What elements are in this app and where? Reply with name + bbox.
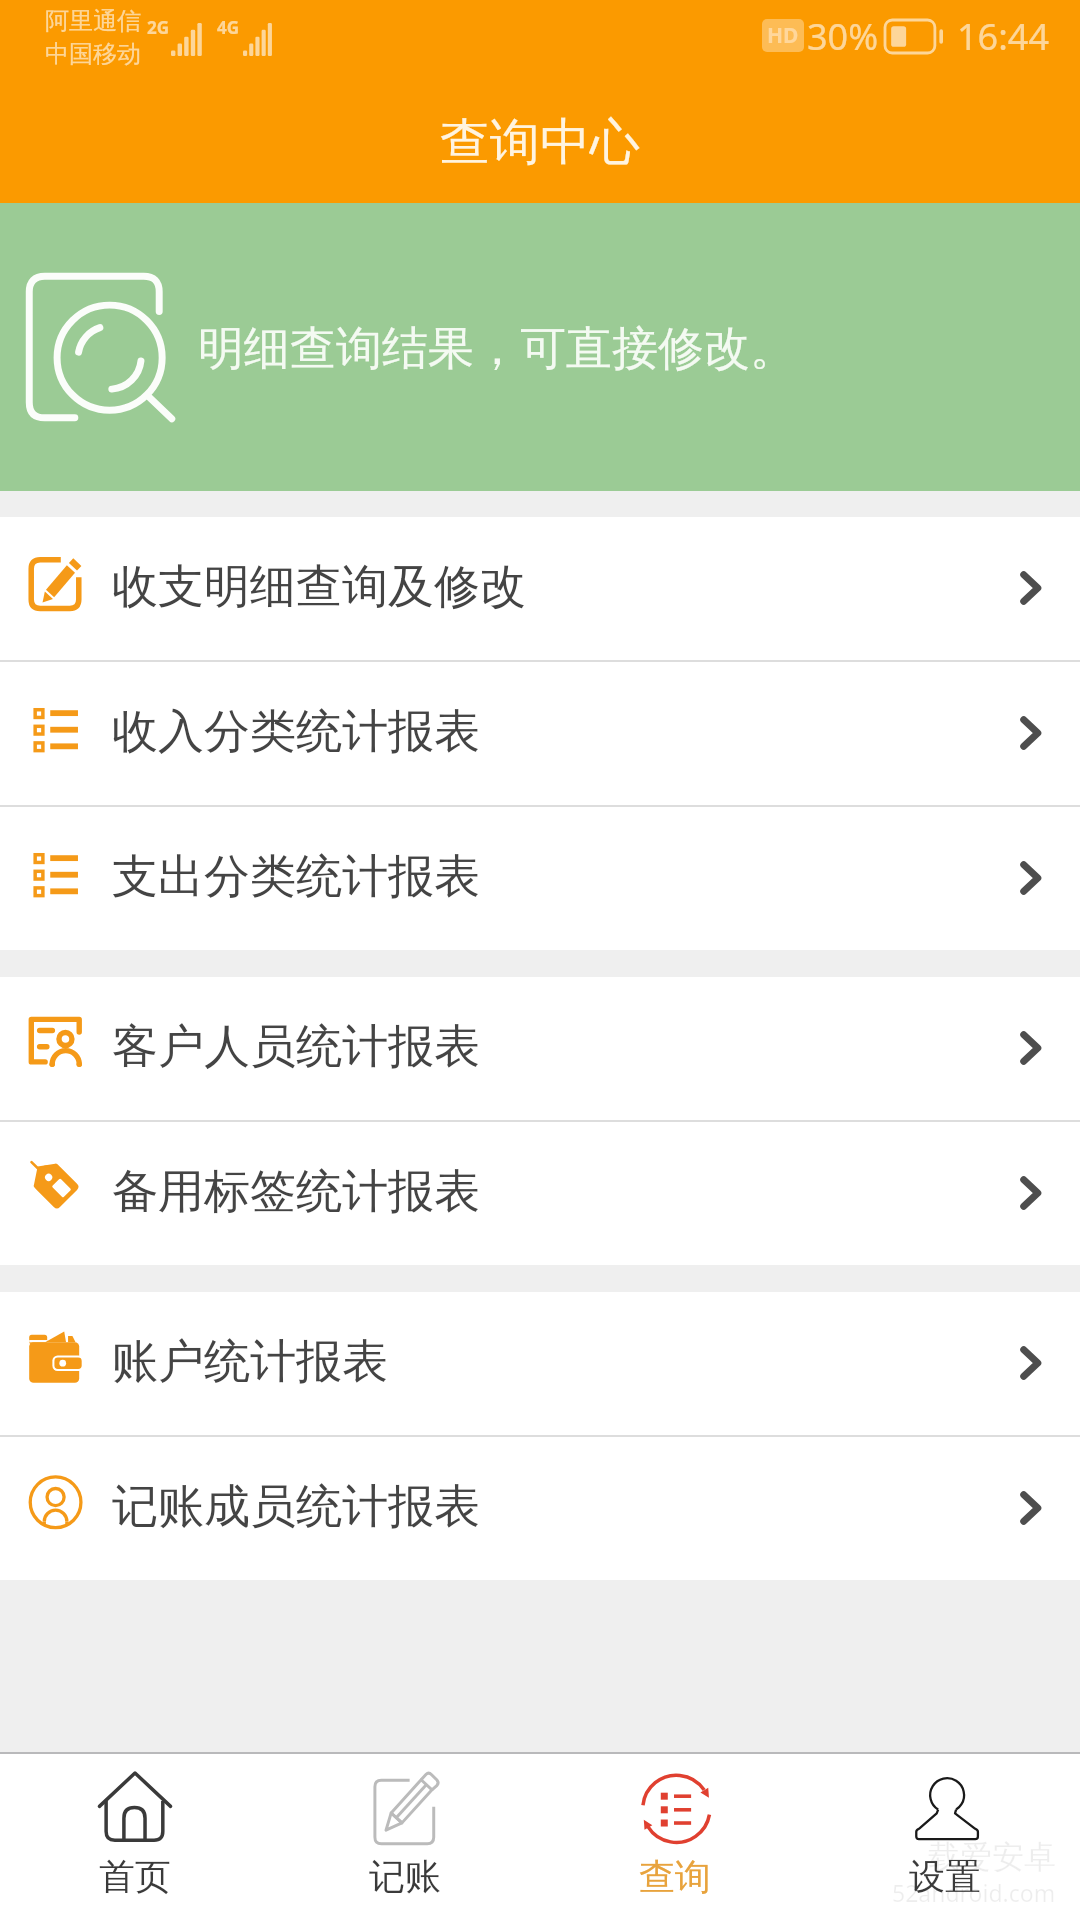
staticText: 设置: [909, 1854, 981, 1899]
staticText: 2G: [147, 16, 170, 39]
staticText: 阿里通信: [45, 6, 141, 36]
button[interactable]: 记账成员统计报表: [0, 1437, 1080, 1580]
staticText: HD: [767, 21, 799, 50]
button[interactable]: 收入分类统计报表: [0, 662, 1080, 805]
button[interactable]: 设置: [810, 1752, 1080, 1920]
staticText: 客户人员统计报表: [112, 1018, 480, 1076]
button[interactable]: 记账: [270, 1752, 540, 1920]
staticText: 30%: [807, 12, 879, 61]
staticText: 载爱安卓: [928, 1837, 1056, 1877]
staticText: 记账成员统计报表: [112, 1478, 480, 1536]
staticText: 收支明细查询及修改: [112, 558, 526, 616]
staticText: 首页: [99, 1854, 171, 1899]
staticText: 明细查询结果，可直接修改。: [198, 320, 796, 378]
staticText: 4G: [217, 16, 240, 39]
button[interactable]: 首页: [0, 1752, 270, 1920]
staticText: 支出分类统计报表: [112, 848, 480, 906]
staticText: 查询中心: [440, 111, 640, 174]
staticText: 账户统计报表: [112, 1333, 388, 1391]
staticText: 收入分类统计报表: [112, 703, 480, 761]
button[interactable]: 收支明细查询及修改: [0, 517, 1080, 660]
staticText: 中国移动: [45, 39, 141, 69]
button[interactable]: 支出分类统计报表: [0, 807, 1080, 950]
staticText: 备用标签统计报表: [112, 1163, 480, 1221]
staticText: 查询: [639, 1854, 711, 1899]
button[interactable]: 客户人员统计报表: [0, 977, 1080, 1120]
button[interactable]: 账户统计报表: [0, 1292, 1080, 1435]
staticText: 记账: [369, 1854, 441, 1899]
staticText: 16:44: [957, 12, 1050, 61]
staticText: 52android.com: [892, 1877, 1056, 1908]
button[interactable]: 备用标签统计报表: [0, 1122, 1080, 1265]
button[interactable]: 查询: [540, 1752, 810, 1920]
